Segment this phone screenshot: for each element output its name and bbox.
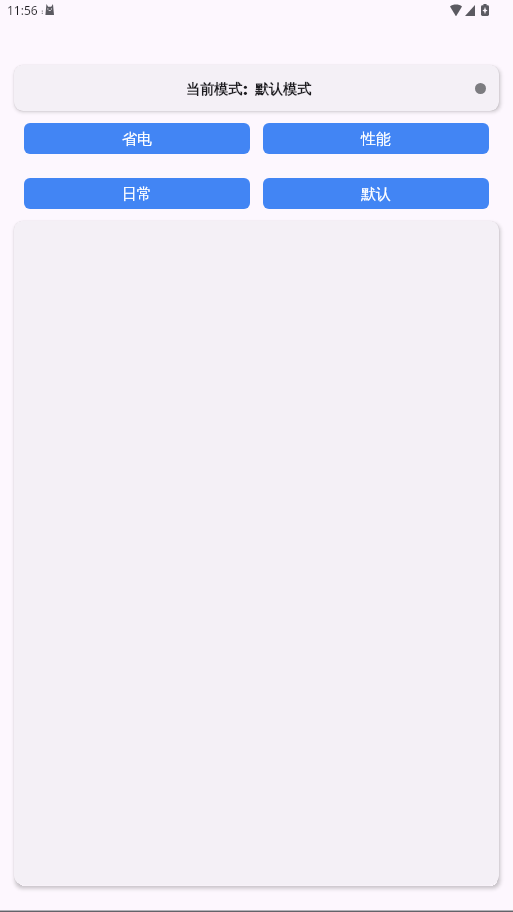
button[interactable]: 性能 xyxy=(263,123,489,154)
staticText: 当前模式 xyxy=(186,81,242,99)
staticText: 日常 xyxy=(122,185,152,204)
button[interactable]: 日常 xyxy=(24,178,250,209)
staticText: 性能 xyxy=(361,130,391,149)
staticText: 11:56 xyxy=(7,2,38,18)
other: 模式状态指示 xyxy=(475,83,486,94)
staticText: 默认 xyxy=(361,185,391,204)
staticText: 默认模式 xyxy=(255,81,311,99)
button[interactable]: 当前模式 xyxy=(14,65,499,111)
staticText: 省电 xyxy=(122,130,152,149)
button[interactable]: 默认 xyxy=(263,178,489,209)
button[interactable]: 省电 xyxy=(24,123,250,154)
